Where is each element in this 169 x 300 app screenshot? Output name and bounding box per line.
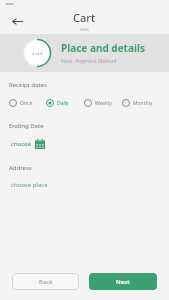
staticText: Receipt dates — [9, 81, 47, 89]
staticText: Ending Date — [9, 122, 44, 130]
button[interactable]: Monthly — [122, 97, 160, 109]
staticText: Daily — [57, 100, 69, 107]
staticText: Back — [39, 278, 53, 286]
staticText: choose — [11, 140, 32, 148]
button[interactable]: Back — [12, 273, 79, 290]
button[interactable]: Once — [9, 97, 46, 109]
staticText: choose place — [11, 181, 48, 189]
button[interactable]: Back — [6, 10, 28, 32]
staticText: Next — [116, 278, 130, 286]
staticText: Address — [9, 164, 32, 172]
button[interactable]: choose — [9, 137, 47, 151]
button[interactable]: Daily — [46, 97, 84, 109]
button[interactable]: Weekly — [84, 97, 122, 109]
staticText: RMB — [80, 27, 89, 32]
staticText: Cart — [73, 10, 96, 25]
staticText: 2 of 4 — [32, 51, 43, 56]
button[interactable]: Next — [89, 273, 157, 290]
staticText: Monthly — [133, 100, 153, 107]
button[interactable]: choose place — [9, 180, 50, 190]
staticText: Place and details — [61, 41, 145, 55]
staticText: Once — [20, 100, 33, 107]
staticText: Next : Payment Method — [61, 58, 117, 65]
staticText: Weekly — [95, 100, 112, 107]
